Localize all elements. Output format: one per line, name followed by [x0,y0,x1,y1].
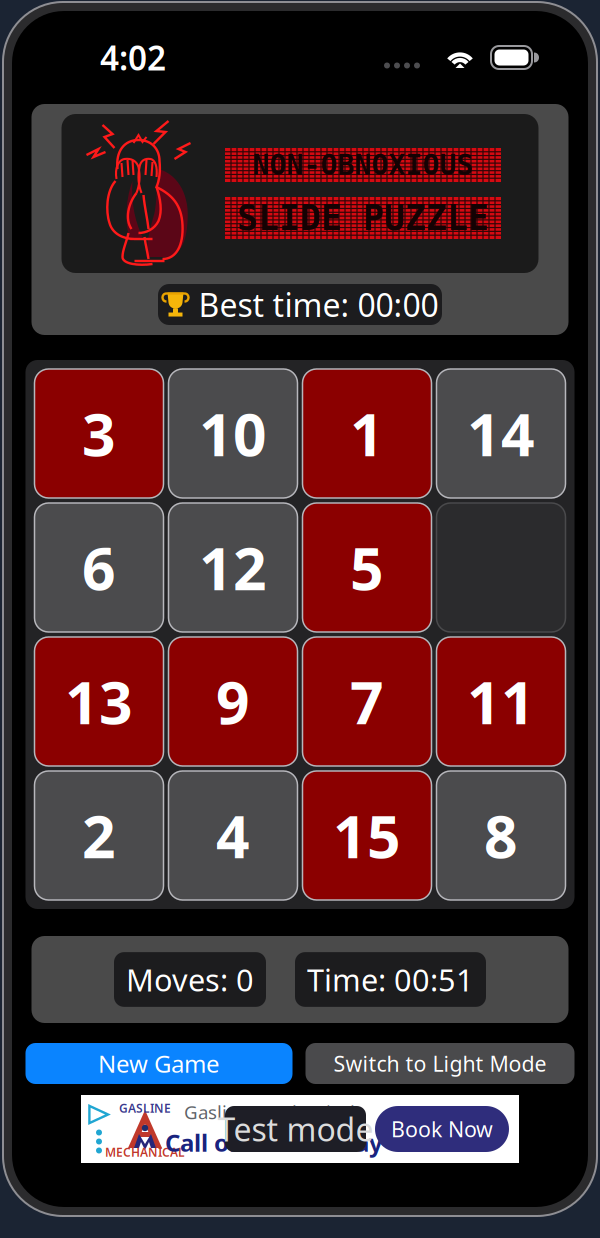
staticText: 8 [484,796,518,874]
staticText: 6 [82,528,116,606]
staticText: 9 [216,662,250,740]
staticText: Switch to Light Mode [333,1049,546,1078]
staticText: 10 [199,394,267,472]
button[interactable]: 11 [436,637,565,766]
button[interactable]: 10 [168,369,297,498]
staticText: NON-OBNOXIOUS [252,149,473,181]
button[interactable]: 9 [168,637,297,766]
staticText: 7 [350,662,384,740]
staticText: 4 [216,796,250,874]
staticText: 3 [82,394,116,472]
button[interactable]: 12 [168,503,297,632]
button[interactable]: 7 [302,637,431,766]
staticText: New Game [98,1048,220,1079]
button[interactable]: 2 [34,771,163,900]
staticText: Gasline Mechanical [184,1100,355,1124]
staticText: Test mode [217,1108,373,1150]
button[interactable]: Switch to Light Mode [305,1043,574,1084]
button[interactable]: 8 [436,771,565,900]
button[interactable]: 3 [34,369,163,498]
button[interactable]: 14 [436,369,565,498]
button[interactable]: 5 [302,503,431,632]
staticText: 1 [350,394,384,472]
staticText: 5 [350,528,384,606]
staticText: 2 [82,796,116,874]
staticText: 15 [333,796,401,874]
staticText: Book Now [391,1115,493,1143]
staticText: MECHANICAL [105,1144,185,1160]
button[interactable]: Book Now [375,1106,509,1152]
button[interactable]: 13 [34,637,163,766]
staticText: 13 [65,662,133,740]
staticText: 12 [199,528,267,606]
button[interactable]: 15 [302,771,431,900]
staticText: GASLINE [119,1100,171,1116]
button[interactable]: 1 [302,369,431,498]
button[interactable] [436,503,565,632]
staticText: Call or Book Today [165,1126,383,1158]
button[interactable]: 6 [34,503,163,632]
staticText: SLIDE PUZZLE [237,198,489,238]
staticText: Time: 00:51 [307,959,474,1000]
staticText: 11 [467,662,535,740]
staticText: Best time: 00:00 [198,283,438,326]
button[interactable]: New Game [25,1043,292,1084]
button[interactable]: 4 [168,771,297,900]
staticText: 14 [467,394,535,472]
staticText: Moves: 0 [126,959,254,1000]
staticText: 4:02 [100,35,166,80]
